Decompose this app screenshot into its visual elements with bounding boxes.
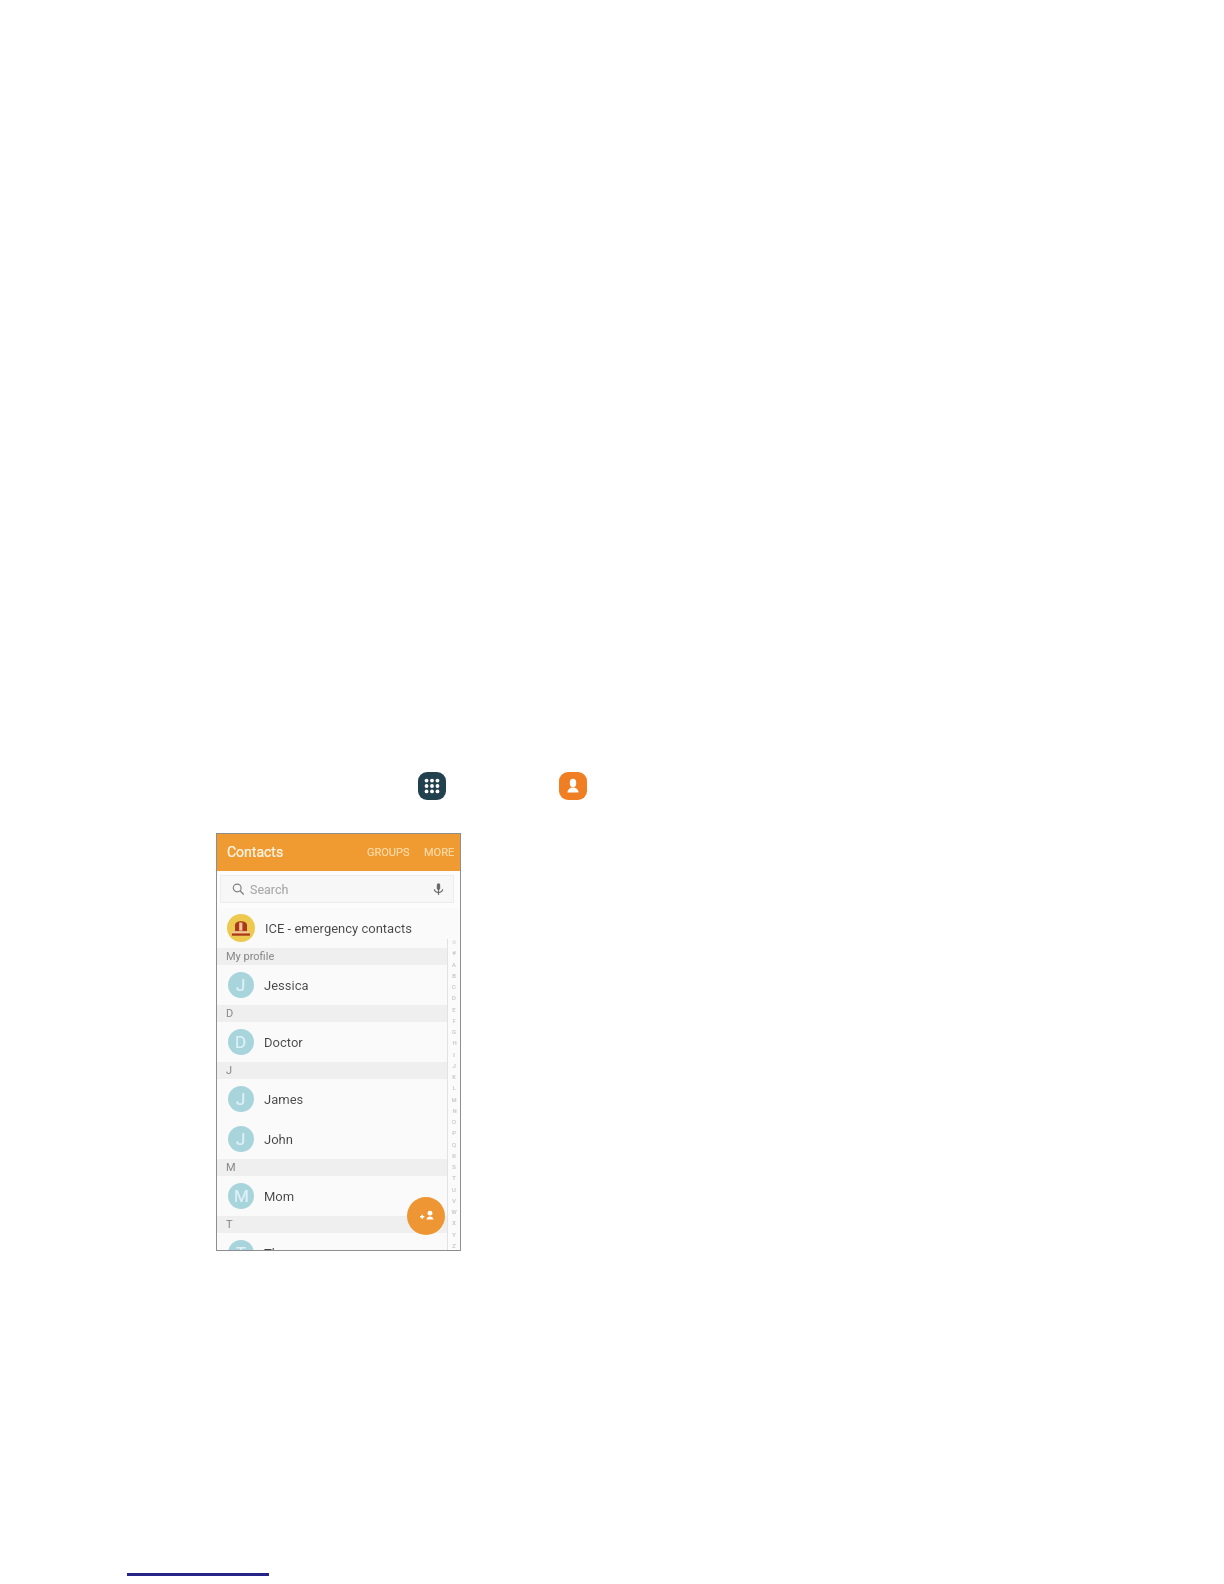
staticText: My profile [226,950,275,963]
staticText: A [452,962,456,969]
button[interactable]: J [216,965,461,1005]
staticText: Contacts [227,844,284,860]
staticText: M [226,1161,236,1174]
button[interactable]: Alphabet index [447,939,461,1250]
staticText: L [452,1085,456,1092]
staticText: O [452,1119,456,1126]
staticText: N [452,1108,457,1115]
staticText: R [452,1153,456,1160]
staticText: H [452,1040,457,1047]
staticText: Mom [264,1189,295,1204]
staticText: P [452,1130,456,1137]
staticText: G [452,1029,456,1036]
staticText: # [452,950,456,957]
staticText: F [452,1018,456,1025]
staticText: Jessica [264,978,309,993]
button[interactable]: ICE - emergency contacts [216,908,461,948]
staticText: U [452,1187,456,1194]
staticText: B [452,973,456,980]
button[interactable]: J [216,1119,461,1159]
staticText: Search [250,882,289,897]
staticText: E [452,1007,456,1014]
button[interactable]: T [216,1233,461,1251]
staticText: S [452,1164,456,1171]
staticText: M [451,1097,457,1104]
staticText: ICE - emergency contacts [265,921,412,936]
button[interactable]: M [216,1176,461,1216]
staticText: Y [452,1232,456,1239]
button[interactable]: Apps [418,772,446,800]
staticText: V [452,1198,456,1205]
staticText: M [234,1186,249,1206]
button[interactable]: Add contact [407,1197,445,1235]
staticText: J [226,1064,233,1077]
staticText: Th [264,1246,279,1251]
staticText: I [453,1052,455,1059]
staticText: T [236,1243,247,1251]
button[interactable]: GROUPS [365,838,412,867]
staticText: James [264,1092,304,1107]
staticText: C [452,984,456,991]
button[interactable]: D [216,1022,461,1062]
button[interactable]: J [216,1079,461,1119]
staticText: Doctor [264,1035,303,1050]
staticText: T [226,1218,233,1231]
button[interactable]: MORE [422,838,457,867]
staticText: J [236,1089,246,1109]
staticText: J [236,975,246,995]
staticText: Z [452,1243,456,1250]
staticText: Q [452,1142,456,1149]
staticText: K [452,1074,456,1081]
staticText: GROUPS [367,846,410,859]
staticText: T [452,1175,456,1182]
staticText: W [451,1209,457,1216]
button[interactable]: Contacts [559,772,587,800]
staticText: J [452,1063,456,1070]
staticText: D [452,995,456,1002]
button[interactable]: Search [220,875,454,903]
staticText: D [226,1007,234,1020]
staticText: MORE [424,846,455,859]
staticText: X [452,1220,456,1227]
staticText: John [264,1132,293,1147]
staticText: D [235,1032,247,1052]
staticText: J [236,1129,246,1149]
staticText: ☆ [451,939,457,946]
